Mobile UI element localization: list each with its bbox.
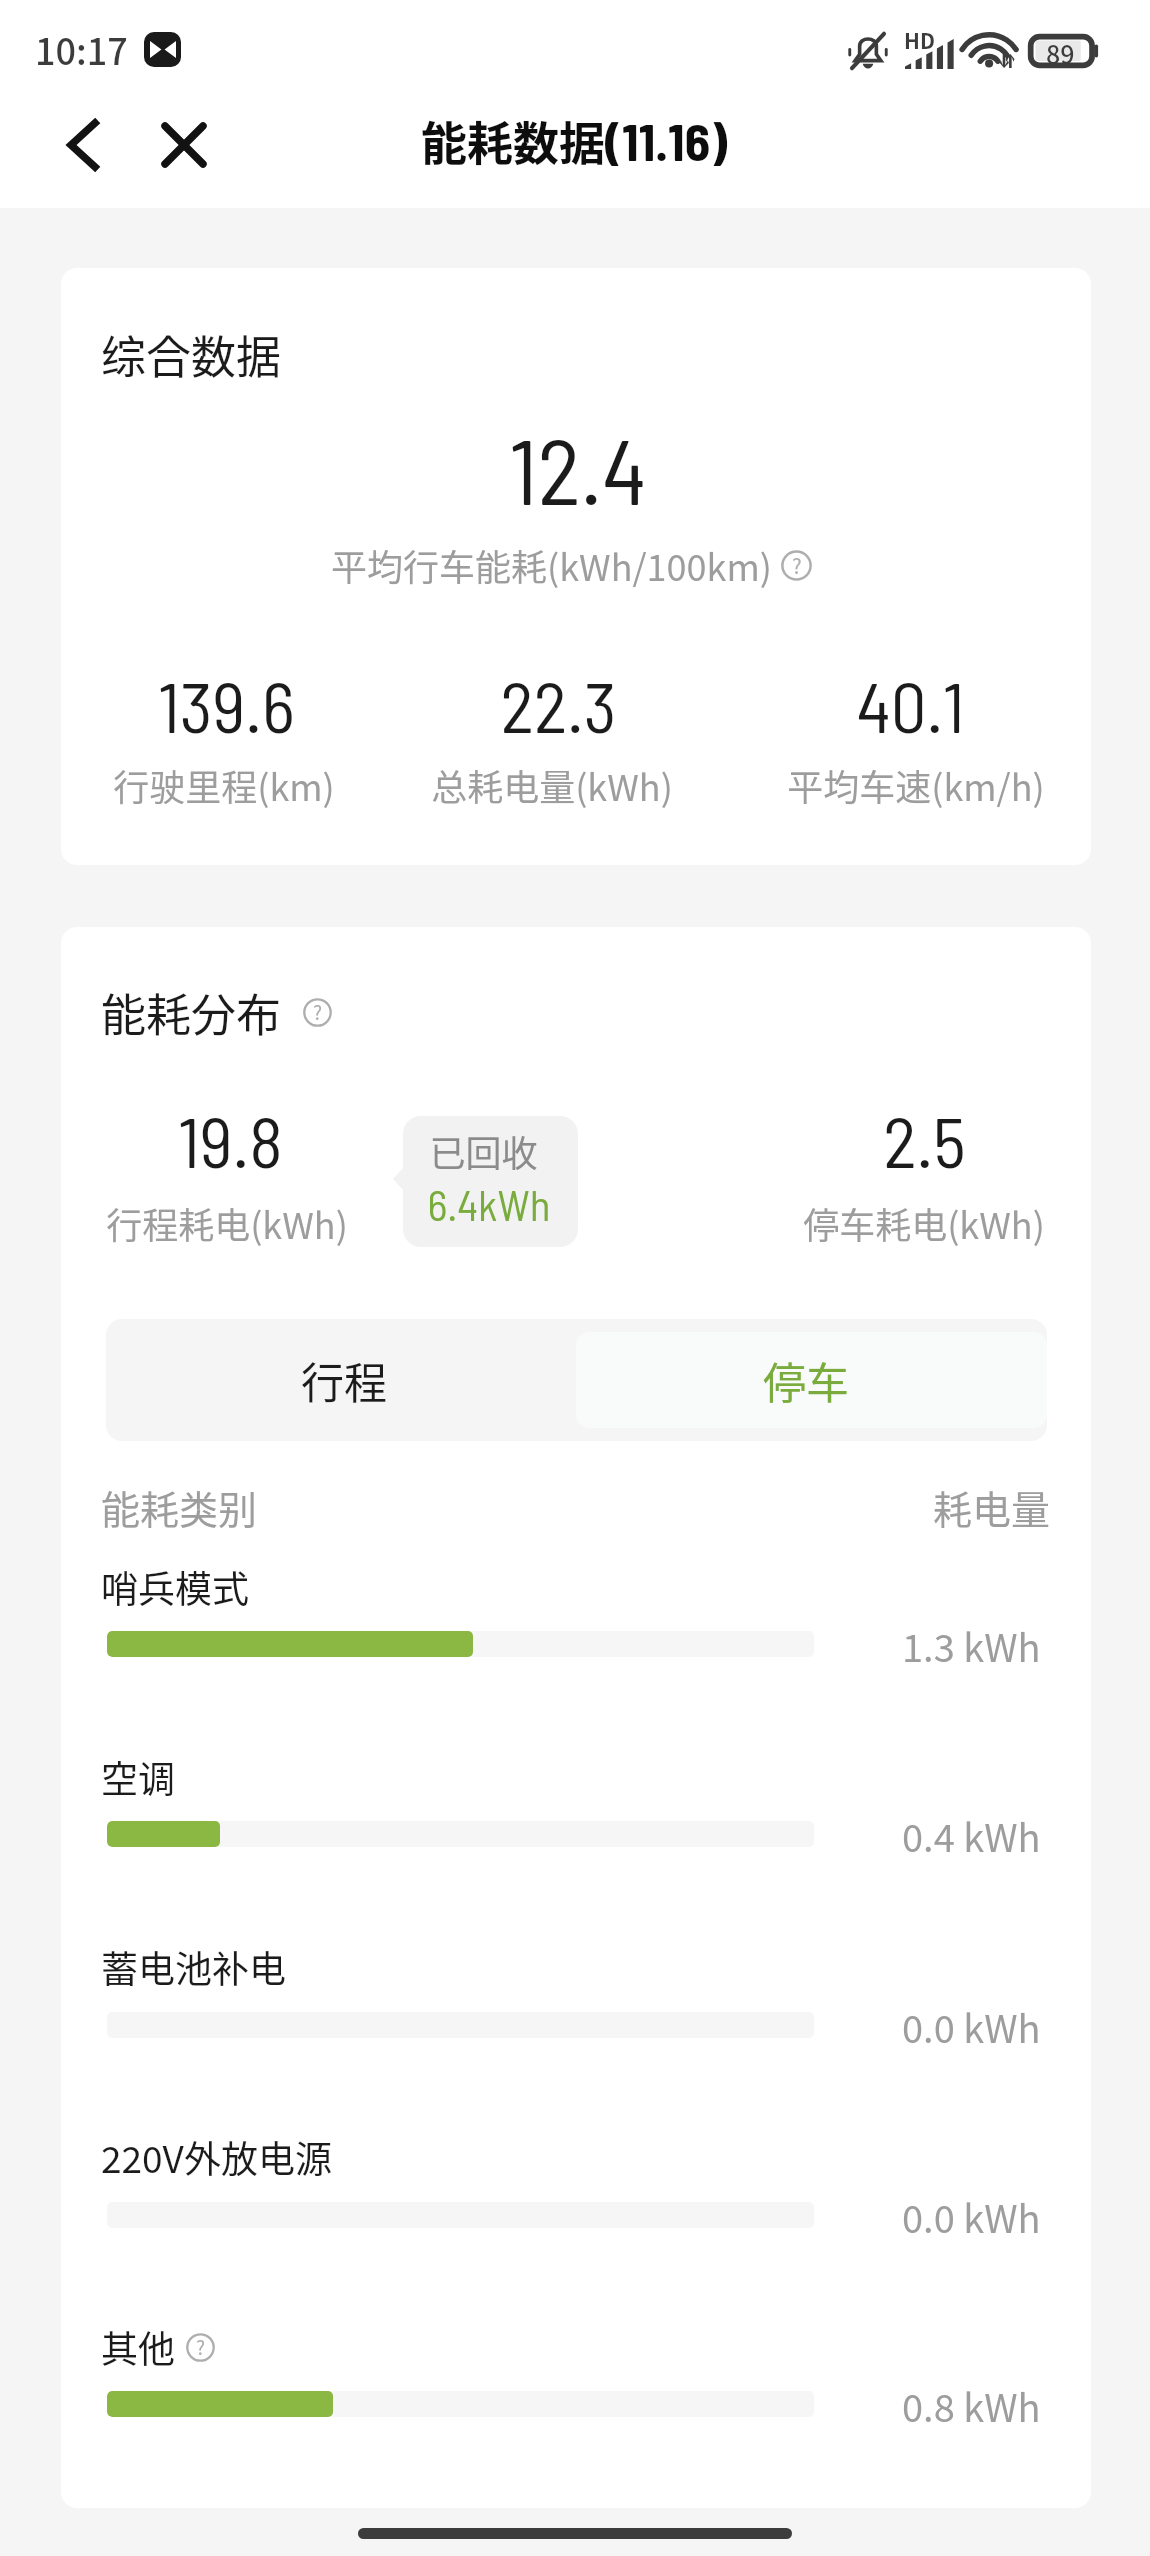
staticText: 平均行车能耗(kWh/100km) [331,539,772,591]
staticText: 已回收 [429,1125,538,1177]
staticText: 12.4 [509,413,647,523]
staticText: 2.5 [883,1097,966,1182]
staticText: 能耗类别 [101,1479,258,1535]
staticText: 89 [1046,35,1075,67]
staticText: 1.3 kWh [902,1618,1041,1673]
staticText: 哨兵模式 [101,1560,249,1614]
staticText: 40.1 [856,662,965,747]
staticText: 0.8 kWh [902,2378,1041,2433]
button[interactable]: 停车 [570,1319,1041,1441]
staticText: (11.16) [605,109,728,171]
staticText: HD [904,25,935,55]
staticText: 0.0 kWh [902,1999,1041,2054]
staticText: 蓄电池补电 [101,1940,286,1994]
staticText: 耗电量 [933,1479,1051,1535]
staticText: ? [313,998,323,1026]
staticText: 能耗分布 [101,980,282,1045]
staticText: 139.6 [158,662,295,747]
staticText: 6.4kWh [427,1178,551,1230]
button[interactable]: Close [128,89,240,201]
staticText: 0.4 kWh [902,1808,1041,1863]
staticText: 19.8 [178,1097,283,1182]
button[interactable]: 行程 [108,1319,579,1441]
staticText: 10:17 [35,23,128,75]
staticText: 停车 [763,1349,849,1411]
staticText: 空调 [101,1750,175,1804]
staticText: ? [196,2333,206,2361]
staticText: 行驶里程(km) [113,759,335,811]
staticText: 综合数据 [101,322,282,387]
staticText: 0.0 kWh [902,2189,1041,2244]
staticText: 行程 [301,1349,387,1411]
staticText: 停车耗电(kWh) [803,1197,1045,1249]
button[interactable]: Back [27,89,139,201]
staticText: 能耗数据 [421,107,605,174]
staticText: 22.3 [500,662,617,747]
staticText: 行程耗电(kWh) [106,1197,348,1249]
staticText: 220V外放电源 [101,2130,332,2184]
staticText: 平均车速(km/h) [787,759,1045,811]
staticText: 其他 [101,2320,175,2374]
staticText: 总耗电量(kWh) [431,759,673,811]
staticText: ? [792,550,802,580]
